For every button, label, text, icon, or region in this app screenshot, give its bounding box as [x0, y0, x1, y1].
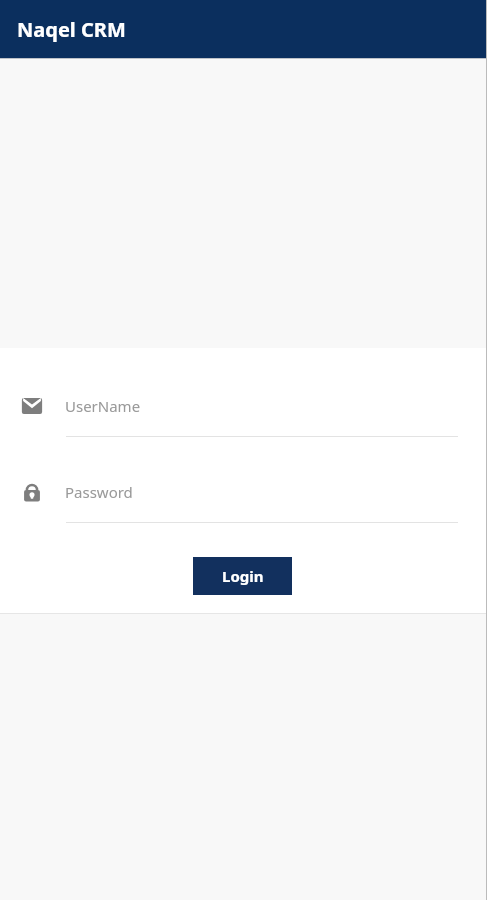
- staticText: Password: [65, 482, 133, 502]
- button[interactable]: Naqel CRM: [0, 0, 487, 58]
- button[interactable]: Username: [0, 389, 487, 423]
- staticText: UserName: [65, 396, 141, 416]
- staticText: Login: [222, 566, 264, 586]
- other: Username: [21, 395, 43, 417]
- staticText: Naqel CRM: [17, 16, 126, 43]
- button[interactable]: Login: [193, 557, 292, 595]
- button[interactable]: Password: [0, 475, 487, 509]
- other: Password: [21, 481, 43, 503]
